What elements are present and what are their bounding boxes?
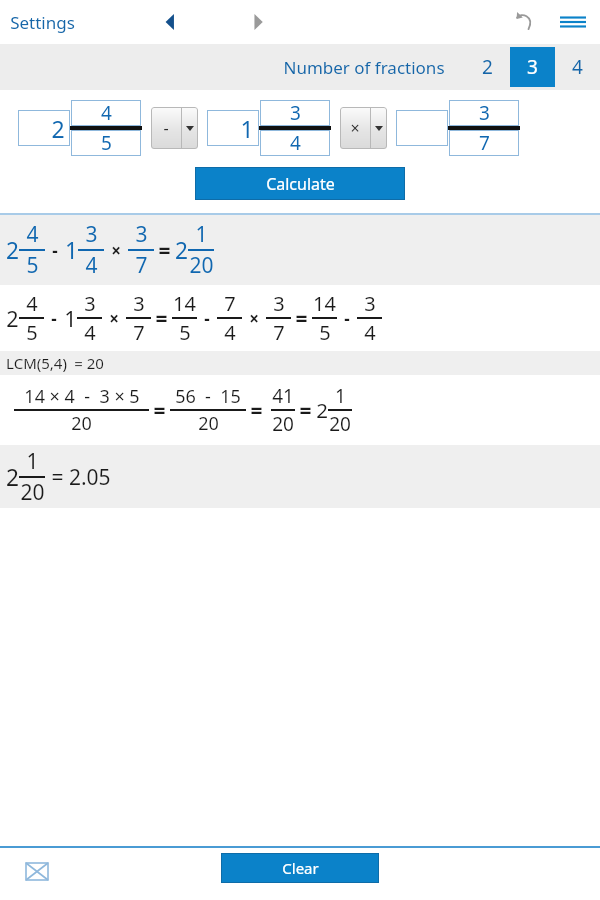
button[interactable]: Clear	[221, 853, 379, 883]
button[interactable]: Calculate	[195, 167, 405, 200]
staticText: 3	[85, 220, 98, 249]
staticText: 7	[224, 290, 236, 317]
staticText: -	[51, 307, 57, 330]
staticText: 2	[6, 304, 19, 333]
staticText: 5	[26, 319, 38, 346]
staticText: Calculate	[266, 173, 335, 195]
button[interactable]: Settings	[0, 3, 85, 42]
staticText: =	[155, 304, 168, 333]
staticText: =	[158, 236, 171, 265]
staticText: 7	[135, 251, 148, 280]
staticText: 2	[51, 113, 65, 144]
staticText: 1	[335, 383, 346, 409]
staticText: -	[52, 239, 58, 262]
staticText: 3	[364, 290, 376, 317]
staticText: -	[163, 117, 169, 139]
staticText: -	[344, 307, 350, 330]
staticText: ×	[249, 307, 259, 330]
staticText: 4	[224, 319, 236, 346]
staticText: 4	[572, 54, 583, 80]
staticText: Clear	[282, 858, 319, 878]
button[interactable]: Menu	[552, 1, 594, 43]
button[interactable]: 1	[207, 110, 259, 146]
staticText: 1	[240, 113, 254, 144]
staticText: 4	[85, 251, 98, 280]
staticText: 5	[26, 251, 39, 280]
button[interactable]: Undo	[506, 3, 544, 41]
button[interactable]: Operator -	[151, 107, 198, 149]
button[interactable]: 3	[449, 100, 519, 126]
staticText: 4	[101, 100, 112, 126]
staticText: = 2.05	[51, 463, 111, 492]
staticText: 5	[101, 130, 112, 156]
button[interactable]: Previous	[155, 5, 189, 39]
staticText: 5	[319, 319, 331, 346]
button[interactable]	[396, 110, 448, 146]
button[interactable]: 7	[449, 130, 519, 156]
staticText: 4	[84, 319, 96, 346]
staticText: 1	[65, 235, 78, 266]
staticText: ×	[109, 307, 119, 330]
staticText: -	[204, 307, 210, 330]
staticText: =	[295, 304, 308, 333]
staticText: 7	[273, 319, 285, 346]
staticText: 20	[20, 478, 45, 507]
button[interactable]: 2	[18, 110, 70, 146]
staticText: 3	[527, 54, 538, 80]
button[interactable]: Next	[240, 5, 274, 39]
staticText: =	[299, 396, 312, 425]
button[interactable]: 4	[71, 100, 141, 126]
staticText: 7	[133, 319, 145, 346]
staticText: Number of fractions	[283, 56, 445, 79]
button[interactable]: 3	[260, 100, 330, 126]
staticText: 1	[64, 304, 77, 333]
staticText: 1	[195, 220, 208, 249]
button[interactable]: Number of fractions	[277, 56, 451, 79]
staticText: 2	[6, 235, 19, 266]
staticText: =	[250, 396, 263, 425]
staticText: 2	[316, 396, 328, 424]
staticText: = 20	[74, 353, 104, 373]
staticText: 3	[84, 290, 96, 317]
staticText: 2	[482, 54, 493, 80]
staticText: 4	[364, 319, 376, 346]
staticText: 5	[179, 319, 191, 346]
button[interactable]: Operator ×	[340, 107, 387, 149]
staticText: 56 - 15	[175, 384, 241, 409]
staticText: 14	[173, 290, 196, 317]
staticText: 3	[290, 100, 301, 126]
staticText: 1	[26, 447, 39, 476]
staticText: 4	[290, 130, 301, 156]
staticText: 4	[26, 220, 39, 249]
staticText: 14	[313, 290, 336, 317]
staticText: 20	[198, 411, 219, 436]
button[interactable]: 4	[555, 47, 600, 87]
staticText: ×	[350, 117, 360, 139]
button[interactable]: Send feedback email	[20, 854, 54, 888]
button[interactable]: 4	[260, 130, 330, 156]
staticText: ×	[111, 239, 121, 262]
staticText: 14 × 4 - 3 × 5	[24, 384, 140, 409]
staticText: 20	[272, 411, 294, 437]
staticText: 3	[133, 290, 145, 317]
staticText: LCM(5,4)	[6, 353, 67, 373]
button[interactable]: 5	[71, 130, 141, 156]
staticText: 3	[479, 100, 490, 126]
staticText: 3	[135, 220, 148, 249]
button[interactable]: 2	[465, 47, 510, 87]
staticText: 2	[6, 462, 19, 493]
staticText: 41	[272, 383, 294, 409]
staticText: 3	[273, 290, 285, 317]
staticText: 4	[26, 290, 38, 317]
staticText: 20	[329, 411, 351, 437]
staticText: Settings	[10, 11, 75, 34]
staticText: 7	[479, 130, 490, 156]
staticText: 20	[189, 251, 214, 280]
staticText: 2	[175, 235, 188, 266]
staticText: =	[153, 396, 166, 425]
staticText: 20	[71, 411, 92, 436]
button[interactable]: 3	[510, 47, 555, 87]
